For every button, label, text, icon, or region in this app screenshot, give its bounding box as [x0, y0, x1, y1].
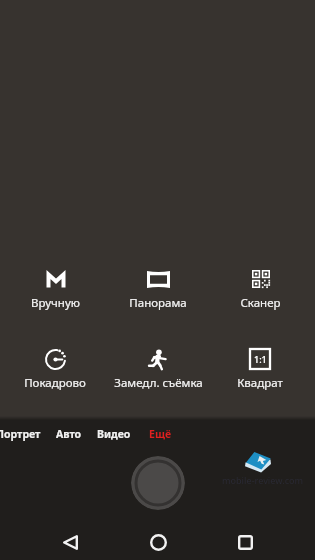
- staticText: Замедл. съёмка: [114, 375, 203, 391]
- staticText: Ещё: [149, 427, 172, 441]
- staticText: Видео: [97, 427, 131, 441]
- button[interactable]: Home: [138, 522, 178, 560]
- button[interactable]: Back: [50, 522, 90, 560]
- button[interactable]: Ещё: [149, 422, 172, 446]
- button[interactable]: Видео: [97, 422, 131, 446]
- button[interactable]: Сканер: [210, 268, 310, 316]
- staticText: Авто: [56, 427, 82, 441]
- button[interactable]: 1:1: [210, 348, 310, 396]
- button[interactable]: Портрет: [0, 422, 41, 446]
- button[interactable]: Панорама: [108, 268, 208, 316]
- staticText: Покадрово: [24, 375, 86, 391]
- staticText: Сканер: [240, 295, 281, 311]
- button[interactable]: Замедл. съёмка: [108, 348, 208, 396]
- button[interactable]: Авто: [56, 422, 82, 446]
- button[interactable]: Recents: [225, 522, 265, 560]
- staticText: Портрет: [0, 427, 41, 441]
- button[interactable]: Вручную: [5, 268, 105, 316]
- button[interactable]: Shutter: [131, 456, 185, 510]
- staticText: Вручную: [31, 295, 80, 311]
- staticText: mobile-review.com: [222, 474, 304, 486]
- staticText: Квадрат: [237, 375, 283, 391]
- staticText: Панорама: [129, 295, 187, 311]
- button[interactable]: Покадрово: [5, 348, 105, 396]
- staticText: 1:1: [254, 353, 267, 365]
